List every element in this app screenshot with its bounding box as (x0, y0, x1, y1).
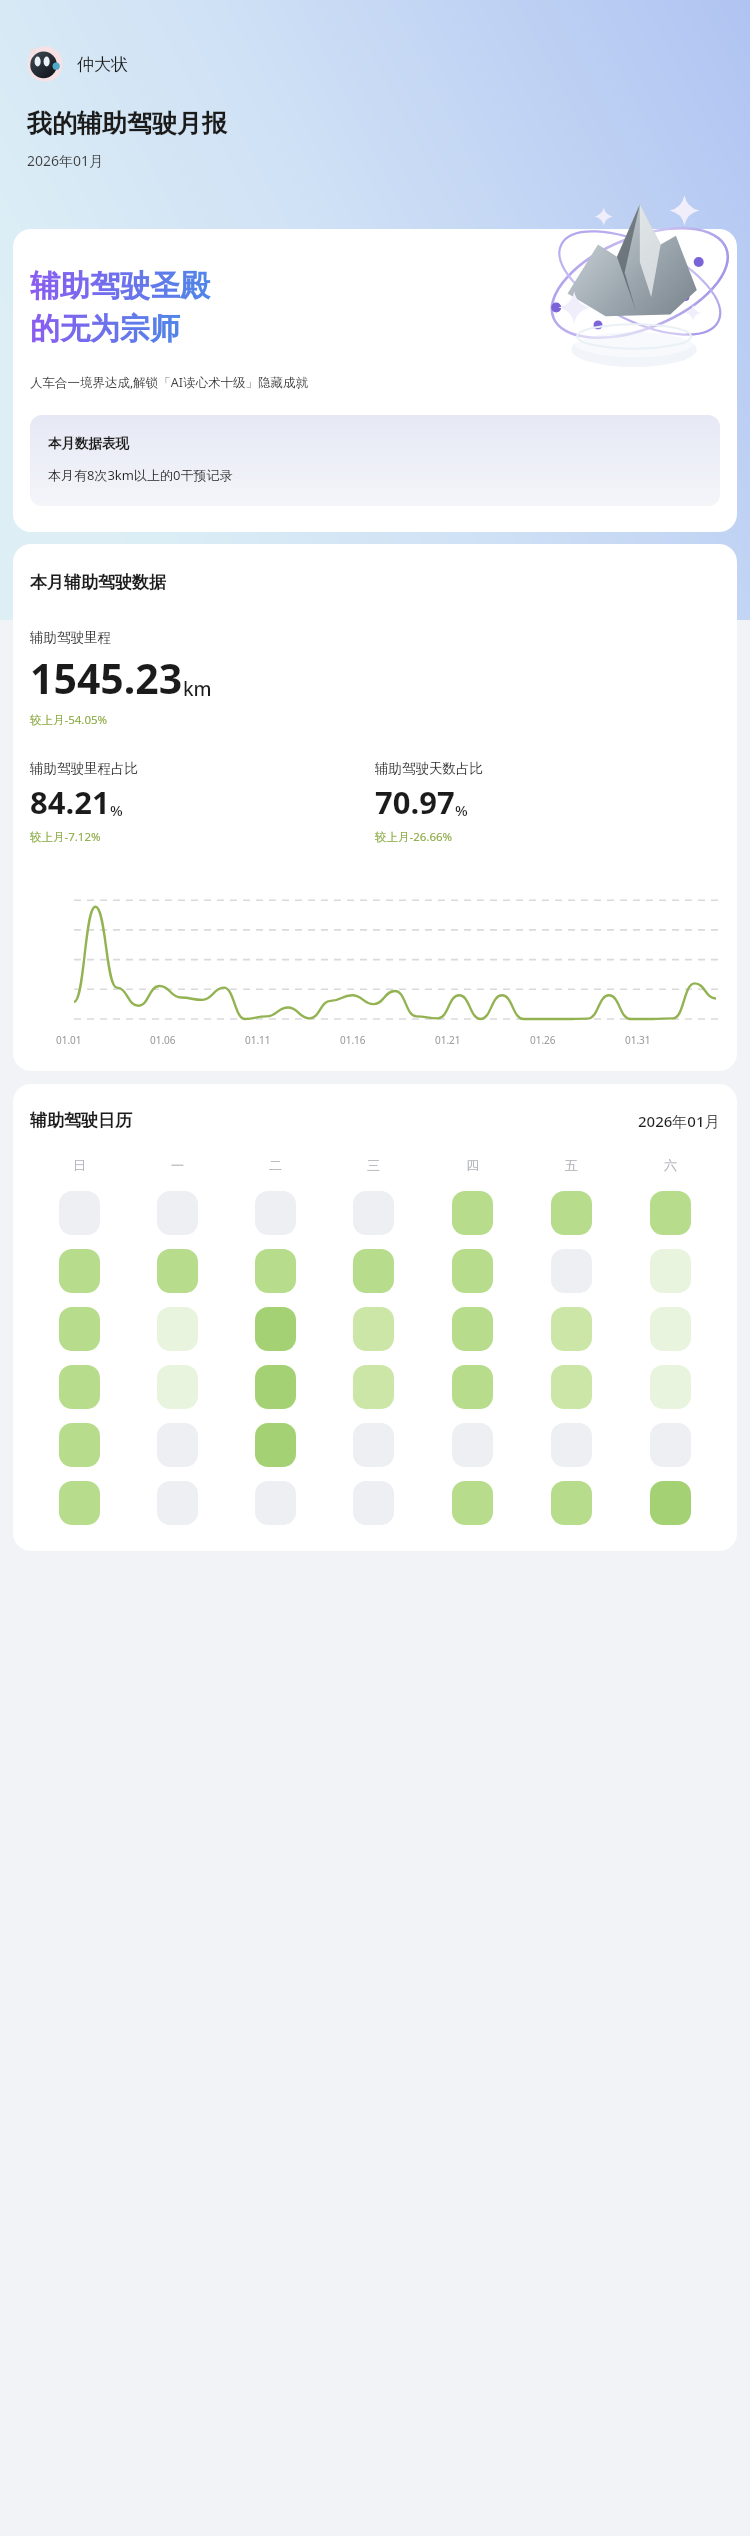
button[interactable] (255, 1249, 296, 1293)
button[interactable] (650, 1365, 691, 1409)
button[interactable] (59, 1423, 100, 1467)
button[interactable] (551, 1191, 592, 1235)
button[interactable] (255, 1307, 296, 1351)
button[interactable]: 辅助驾驶里程占比 (30, 760, 375, 845)
button[interactable] (650, 1481, 691, 1525)
staticText: 01.26 (530, 1033, 556, 1047)
button[interactable] (59, 1191, 100, 1235)
button[interactable] (650, 1191, 691, 1235)
staticText: 四 (466, 1157, 479, 1173)
button[interactable]: 本月辅助驾驶数据 (13, 544, 737, 1071)
staticText: % (455, 800, 468, 820)
staticText: 01.06 (150, 1033, 176, 1047)
button[interactable] (650, 1423, 691, 1467)
staticText: 辅助驾驶里程 (30, 629, 111, 646)
staticText: % (110, 800, 123, 820)
button[interactable] (59, 1365, 100, 1409)
button[interactable] (353, 1249, 394, 1293)
staticText: 五 (565, 1157, 578, 1173)
button[interactable] (650, 1307, 691, 1351)
button[interactable] (59, 1249, 100, 1293)
staticText: km (183, 676, 212, 702)
button[interactable]: 本月数据表现 (30, 415, 720, 506)
staticText: 84.21 (30, 781, 110, 823)
button[interactable] (255, 1191, 296, 1235)
button[interactable]: 辅助驾驶天数占比 (375, 760, 720, 845)
staticText: 仲大状 (77, 54, 128, 75)
other: Avatar (27, 46, 63, 82)
button[interactable] (157, 1481, 198, 1525)
staticText: 日 (73, 1157, 86, 1173)
staticText: 的无为宗师 (30, 310, 180, 348)
staticText: 较上月-7.12% (30, 829, 101, 845)
button[interactable] (551, 1481, 592, 1525)
button[interactable] (157, 1365, 198, 1409)
staticText: 01.16 (340, 1033, 366, 1047)
button[interactable] (452, 1307, 493, 1351)
button[interactable] (353, 1307, 394, 1351)
button[interactable] (452, 1191, 493, 1235)
staticText: 较上月-54.05% (30, 712, 108, 728)
button[interactable]: 辅助驾驶日历 (13, 1084, 737, 1551)
button[interactable]: 辅助驾驶圣殿 (13, 229, 737, 532)
staticText: 较上月-26.66% (375, 829, 453, 845)
button[interactable] (353, 1191, 394, 1235)
button[interactable] (551, 1249, 592, 1293)
staticText: 1545.23 (30, 650, 183, 706)
button[interactable] (353, 1481, 394, 1525)
button[interactable] (551, 1423, 592, 1467)
staticText: 2026年01月 (638, 1111, 720, 1131)
staticText: 一 (171, 1157, 184, 1173)
button[interactable] (452, 1365, 493, 1409)
button[interactable] (157, 1249, 198, 1293)
button[interactable] (551, 1365, 592, 1409)
staticText: 01.31 (625, 1033, 651, 1047)
button[interactable] (157, 1307, 198, 1351)
button[interactable] (353, 1365, 394, 1409)
staticText: 01.21 (435, 1033, 461, 1047)
button[interactable] (452, 1249, 493, 1293)
staticText: 70.97 (375, 781, 455, 823)
button[interactable]: Avatar (27, 46, 128, 82)
staticText: 六 (664, 1157, 677, 1173)
button[interactable] (255, 1365, 296, 1409)
staticText: 01.11 (245, 1033, 271, 1047)
button[interactable] (650, 1249, 691, 1293)
staticText: 本月辅助驾驶数据 (30, 572, 166, 593)
button[interactable] (59, 1481, 100, 1525)
staticText: 本月数据表现 (48, 435, 129, 452)
staticText: 01.01 (56, 1033, 82, 1047)
button[interactable] (59, 1307, 100, 1351)
button[interactable] (157, 1191, 198, 1235)
staticText: 二 (269, 1157, 282, 1173)
button[interactable] (551, 1307, 592, 1351)
button[interactable] (452, 1481, 493, 1525)
button[interactable] (353, 1423, 394, 1467)
staticText: 人车合一境界达成,解锁「AI读心术十级」隐藏成就 (30, 374, 309, 391)
staticText: 本月有8次3km以上的0干预记录 (48, 466, 233, 484)
button[interactable] (255, 1423, 296, 1467)
staticText: 辅助驾驶圣殿 (30, 267, 210, 305)
staticText: 辅助驾驶里程占比 (30, 760, 138, 777)
staticText: 2026年01月 (27, 151, 104, 170)
staticText: 辅助驾驶日历 (30, 1110, 132, 1131)
button[interactable] (157, 1423, 198, 1467)
staticText: 辅助驾驶天数占比 (375, 760, 483, 777)
staticText: 三 (367, 1157, 380, 1173)
staticText: 我的辅助驾驶月报 (27, 108, 227, 139)
button[interactable] (452, 1423, 493, 1467)
button[interactable] (255, 1481, 296, 1525)
